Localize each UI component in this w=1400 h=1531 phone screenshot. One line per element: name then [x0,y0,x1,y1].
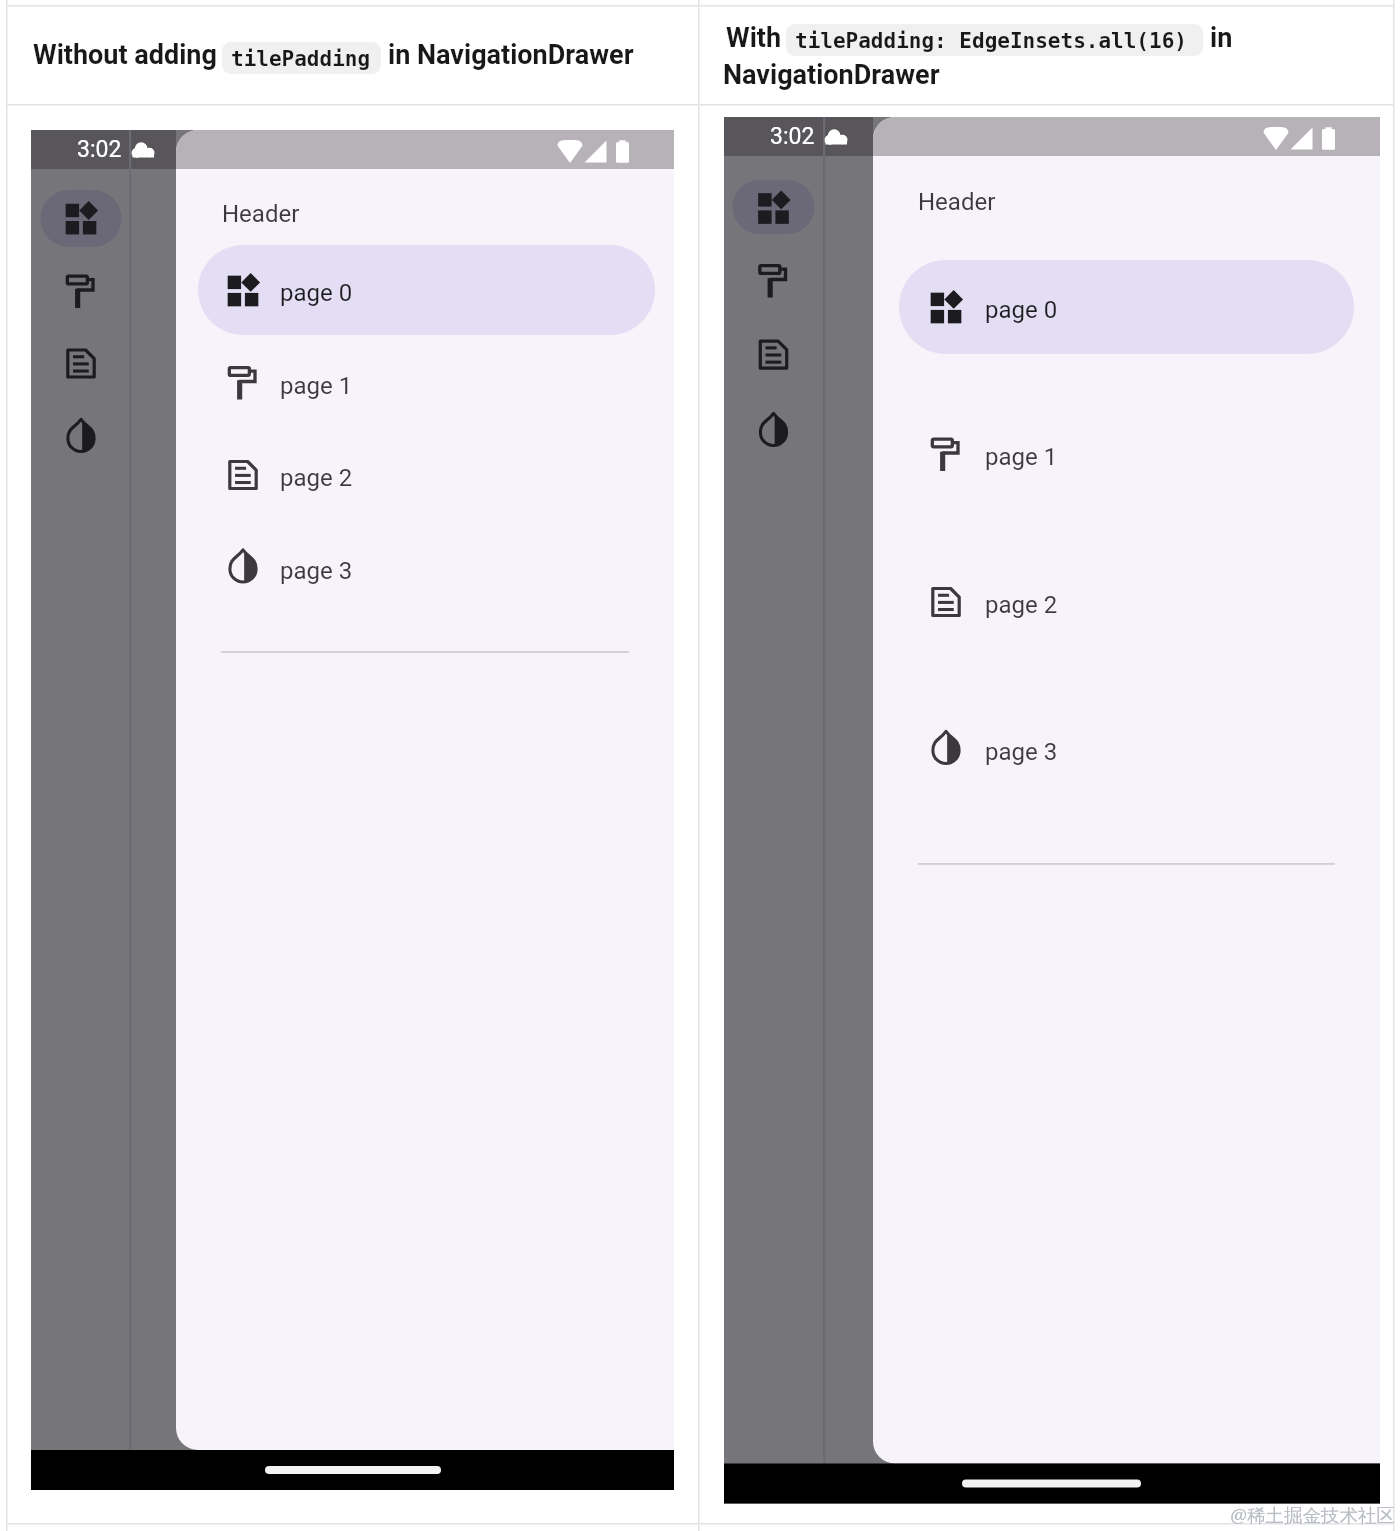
staticText: page 0 [280,279,353,307]
button[interactable]: page 2 [280,464,353,492]
button[interactable]: page 3 [198,523,655,613]
button[interactable]: Paint [41,263,122,320]
button[interactable]: page 0 [985,296,1058,324]
button[interactable]: page 3 [985,738,1058,766]
staticText: NavigationDrawer [723,59,940,91]
button[interactable]: page 1 [985,443,1058,471]
button[interactable]: page 0 [280,279,353,307]
staticText: 3:02 [770,123,815,150]
button[interactable]: page 0 [198,245,655,335]
staticText: page 1 [280,372,353,400]
button[interactable]: Document [733,328,815,382]
staticText: 3:02 [77,136,122,163]
staticText: in NavigationDrawer [388,39,634,71]
staticText: page 3 [985,738,1058,766]
staticText: in [1210,22,1233,54]
button[interactable]: Contrast [733,405,815,459]
staticText: page 3 [280,557,353,585]
button[interactable]: page 2 [899,555,1354,649]
staticText: With [726,22,782,54]
staticText: page 2 [280,464,353,492]
button[interactable]: page 1 [899,408,1354,502]
staticText: Without adding [33,39,217,71]
button[interactable]: Dashboard [733,181,815,235]
staticText: tilePadding [231,47,371,71]
staticText: Header [222,200,300,228]
staticText: @稀土掘金技术社区 [1230,1502,1396,1527]
button[interactable]: page 3 [899,703,1354,797]
button[interactable]: page 1 [280,372,353,400]
staticText: tilePadding: EdgeInsets.all(16) [795,29,1187,53]
button[interactable]: Dashboard [41,190,122,247]
button[interactable]: page 1 [198,338,655,428]
button[interactable]: Paint [733,254,815,308]
button[interactable]: Contrast [41,409,122,466]
button[interactable]: page 3 [280,557,353,585]
staticText: Header [918,188,996,216]
button[interactable]: page 0 [899,260,1354,354]
button[interactable]: Document [41,335,122,392]
staticText: page 0 [985,296,1058,324]
staticText: page 1 [985,443,1058,471]
button[interactable]: page 2 [198,430,655,520]
staticText: page 2 [985,591,1058,619]
button[interactable]: page 2 [985,591,1058,619]
